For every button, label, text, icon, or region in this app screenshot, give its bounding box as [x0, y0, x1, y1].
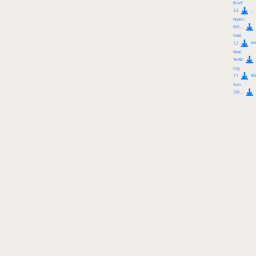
button[interactable]: Sum: [233, 82, 256, 96]
staticText: 310 KB: [233, 89, 243, 94]
staticText: Log: [233, 65, 239, 70]
staticText: 810 KB: [233, 24, 243, 29]
button[interactable]: Report: [233, 16, 256, 31]
button[interactable]: Data: [233, 33, 256, 47]
staticText: Sum: [233, 82, 241, 87]
staticText: Brief: [233, 0, 242, 5]
staticText: MB now: [251, 8, 256, 13]
staticText: MB: [251, 40, 256, 46]
staticText: Report: [233, 16, 244, 22]
staticText: Data: [233, 33, 241, 38]
staticText: MB: [251, 73, 256, 78]
staticText: 7.1: [233, 73, 238, 78]
button[interactable]: Log: [233, 65, 256, 79]
button[interactable]: Brief: [233, 0, 256, 14]
staticText: 2.4: [233, 8, 238, 13]
staticText: 1.2: [233, 40, 238, 46]
staticText: 96 KB: [233, 57, 243, 62]
staticText: Note: [233, 49, 241, 54]
button[interactable]: Note: [233, 49, 256, 63]
